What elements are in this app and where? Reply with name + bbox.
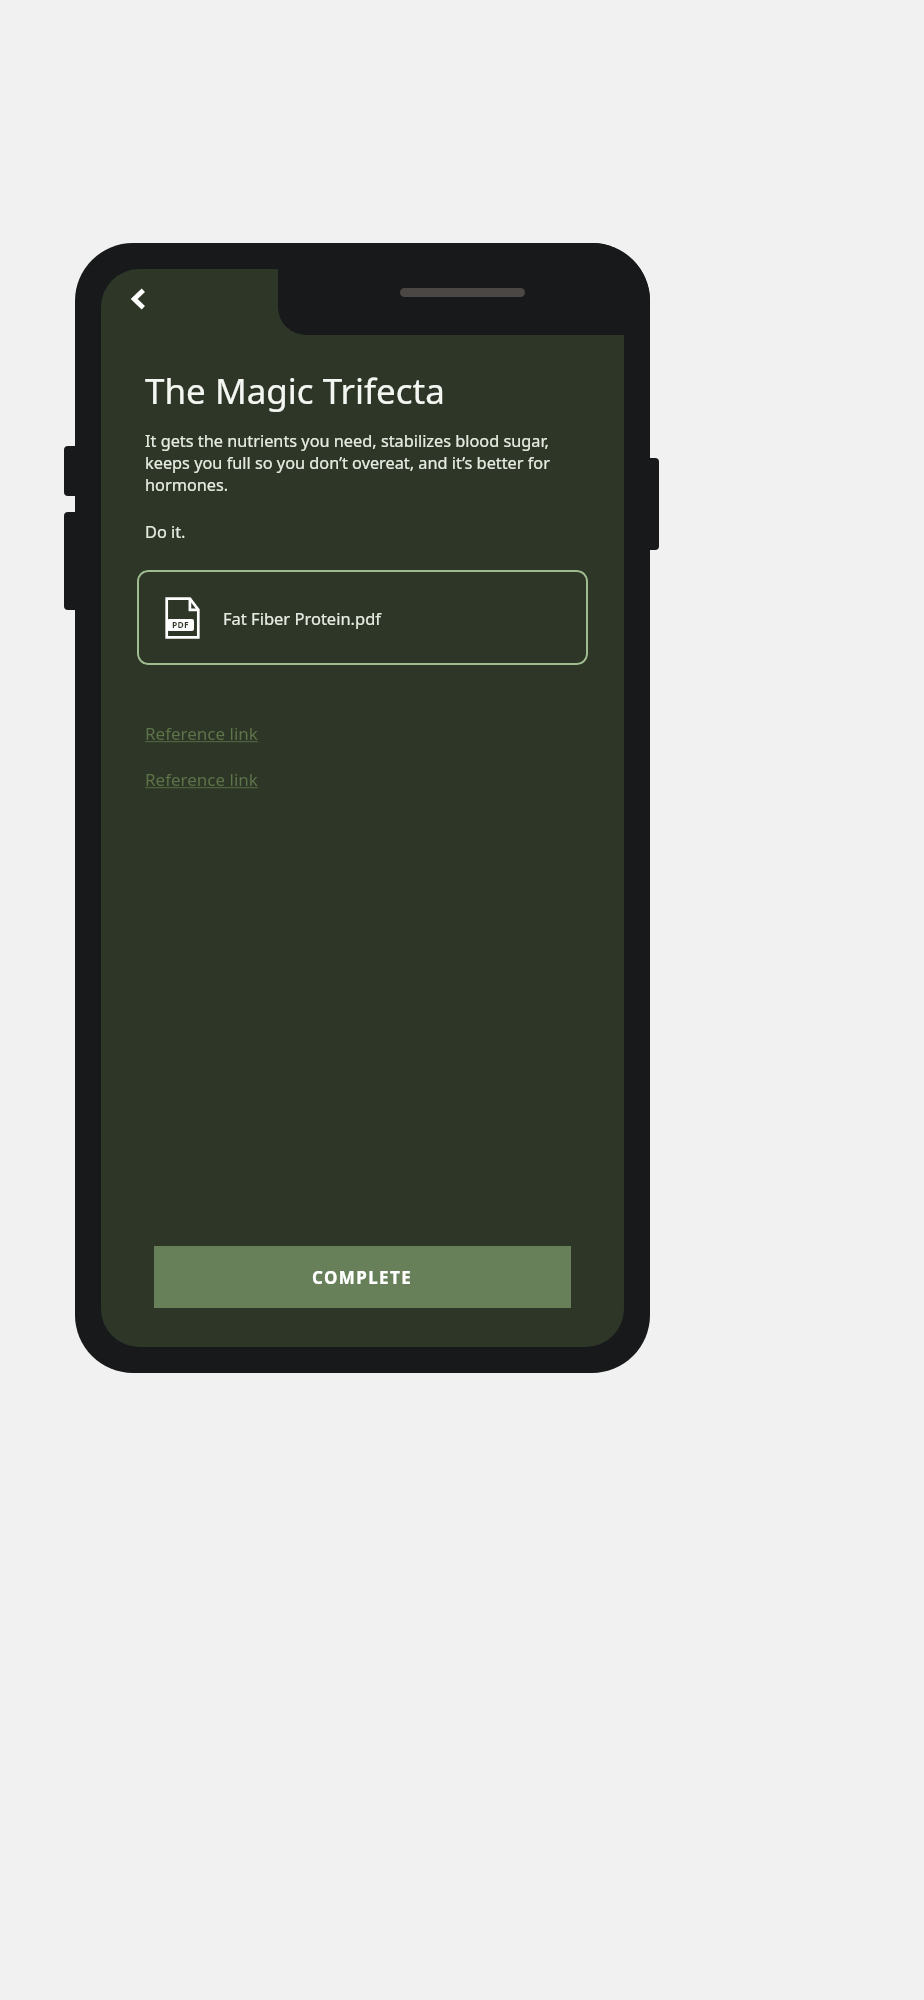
staticText: Reference link [145,768,258,791]
staticText: It gets the nutrients you need, stabiliz… [145,430,592,496]
staticText: COMPLETE [312,1266,413,1289]
staticText: PDF [172,619,189,631]
staticText: Fat Fiber Protein.pdf [223,607,382,629]
button[interactable]: COMPLETE [154,1246,571,1308]
staticText: The Magic Trifecta [145,367,445,415]
button[interactable]: Back [109,269,169,329]
button[interactable]: PDF [137,570,588,665]
staticText: Reference link [145,722,258,745]
button[interactable]: Reference link [145,768,258,791]
staticText: Do it. [145,521,186,543]
button[interactable]: Reference link [145,722,258,745]
